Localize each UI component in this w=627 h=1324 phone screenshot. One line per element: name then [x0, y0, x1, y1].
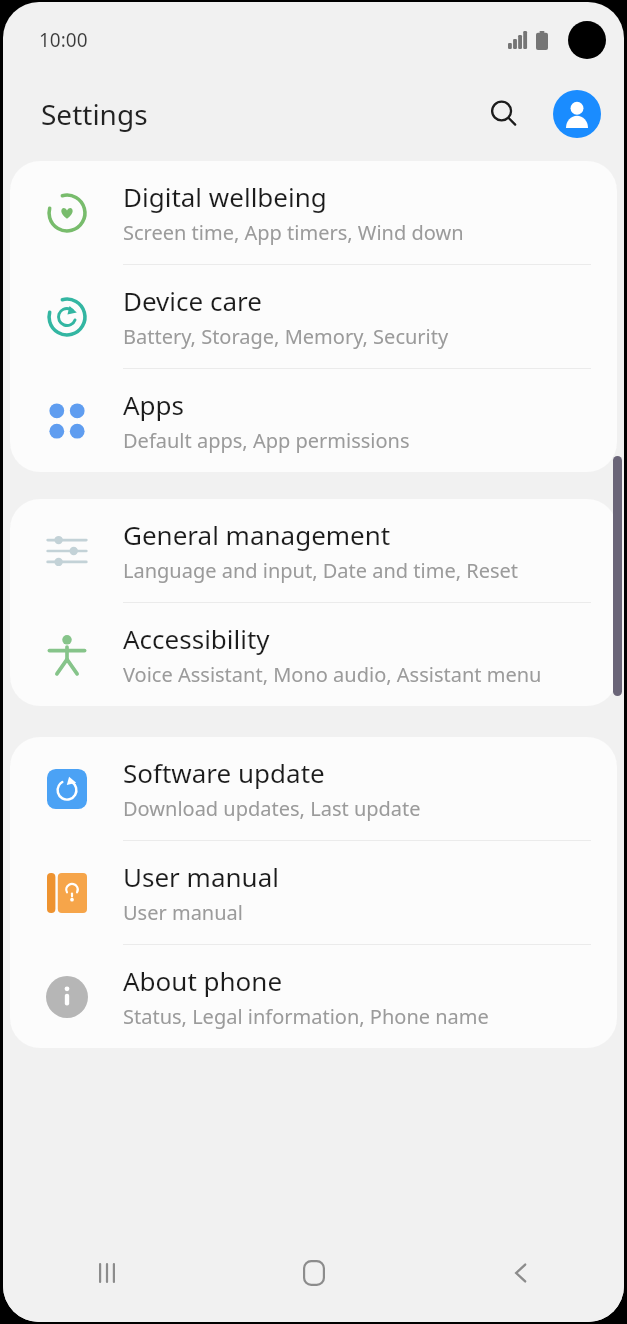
staticText: Accessibility	[123, 621, 270, 656]
staticText: User manual	[123, 899, 243, 926]
button[interactable]: Software update	[10, 737, 617, 840]
button[interactable]: Back	[417, 1234, 624, 1312]
staticText: Apps	[123, 387, 185, 422]
staticText: Voice Assistant, Mono audio, Assistant m…	[123, 661, 542, 688]
button[interactable]: Account	[552, 89, 602, 139]
button[interactable]: Recents	[3, 1234, 210, 1312]
staticText: Settings	[41, 95, 148, 133]
staticText: Battery, Storage, Memory, Security	[123, 323, 449, 350]
staticText: Software update	[123, 755, 325, 790]
button[interactable]: About phone	[10, 945, 617, 1048]
button[interactable]: Apps	[10, 369, 617, 472]
button[interactable]: Accessibility	[10, 603, 617, 706]
staticText: Download updates, Last update	[123, 795, 421, 822]
button[interactable]: General management	[10, 499, 617, 602]
button[interactable]: Search	[478, 88, 530, 140]
button[interactable]: User manual	[10, 841, 617, 944]
staticText: Device care	[123, 283, 262, 318]
staticText: Screen time, App timers, Wind down	[123, 219, 464, 246]
staticText: Language and input, Date and time, Reset	[123, 557, 519, 584]
staticText: General management	[123, 517, 391, 552]
button[interactable]: Home	[210, 1234, 417, 1312]
button[interactable]: Device care	[10, 265, 617, 368]
staticText: Status, Legal information, Phone name	[123, 1003, 489, 1030]
staticText: About phone	[123, 963, 283, 998]
staticText: Digital wellbeing	[123, 179, 327, 214]
staticText: User manual	[123, 859, 279, 894]
button[interactable]: Digital wellbeing	[10, 161, 617, 264]
staticText: Default apps, App permissions	[123, 427, 410, 454]
staticText: 10:00	[39, 27, 88, 53]
